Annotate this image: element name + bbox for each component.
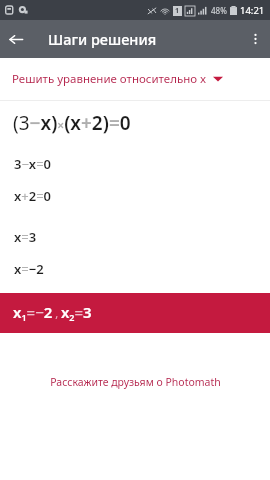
button[interactable]: x=3 — [0, 228, 270, 243]
staticText: Шаги решения — [48, 29, 157, 49]
staticText: x+2=0 — [14, 187, 52, 202]
staticText: 48% — [211, 5, 227, 16]
staticText: (3−x)×(x+2)=0 — [13, 110, 131, 136]
staticText: x1=−2 , x2=3 — [13, 302, 92, 324]
staticText: Решить уравнение относительно x — [12, 71, 207, 87]
staticText: 3−x=0 — [14, 155, 52, 170]
button[interactable]: Решить уравнение относительно x — [0, 58, 270, 100]
staticText: Расскажите друзьям о Photomath — [50, 375, 221, 389]
staticText: 14:21 — [240, 4, 265, 17]
button[interactable]: More options — [240, 24, 270, 54]
button[interactable]: 3−x=0 — [0, 155, 270, 170]
button[interactable]: x=−2 — [0, 260, 270, 275]
button[interactable]: Back — [0, 23, 32, 55]
button[interactable]: x1=−2 , x2=3 — [0, 293, 270, 333]
button[interactable]: x+2=0 — [0, 187, 270, 202]
staticText: 1 — [175, 6, 180, 16]
staticText: x=−2 — [14, 260, 44, 275]
button[interactable]: Расскажите друзьям о Photomath — [0, 371, 270, 393]
staticText: x=3 — [14, 228, 37, 243]
button[interactable]: (3−x)×(x+2)=0 — [0, 101, 270, 145]
